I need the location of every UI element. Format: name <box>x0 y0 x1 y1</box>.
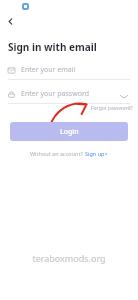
button[interactable]: Login <box>10 122 128 141</box>
button[interactable]: Back <box>2 13 19 30</box>
button[interactable]: Enter your password <box>8 86 130 104</box>
staticText: Enter your password <box>21 89 89 99</box>
staticText: Sign in with email <box>8 40 97 54</box>
staticText: Sign up> <box>85 150 108 157</box>
staticText: teraboxmods.org <box>0 252 138 264</box>
staticText: Login <box>60 127 79 137</box>
staticText: Without an account? <box>30 150 85 157</box>
button[interactable]: Show password <box>117 89 130 102</box>
staticText: Enter your email <box>21 65 76 75</box>
button[interactable]: Sign up> <box>85 150 108 157</box>
button[interactable]: Forgot password? <box>90 104 134 113</box>
staticText: Forgot password? <box>91 105 133 112</box>
button[interactable]: Enter your email <box>8 62 130 80</box>
